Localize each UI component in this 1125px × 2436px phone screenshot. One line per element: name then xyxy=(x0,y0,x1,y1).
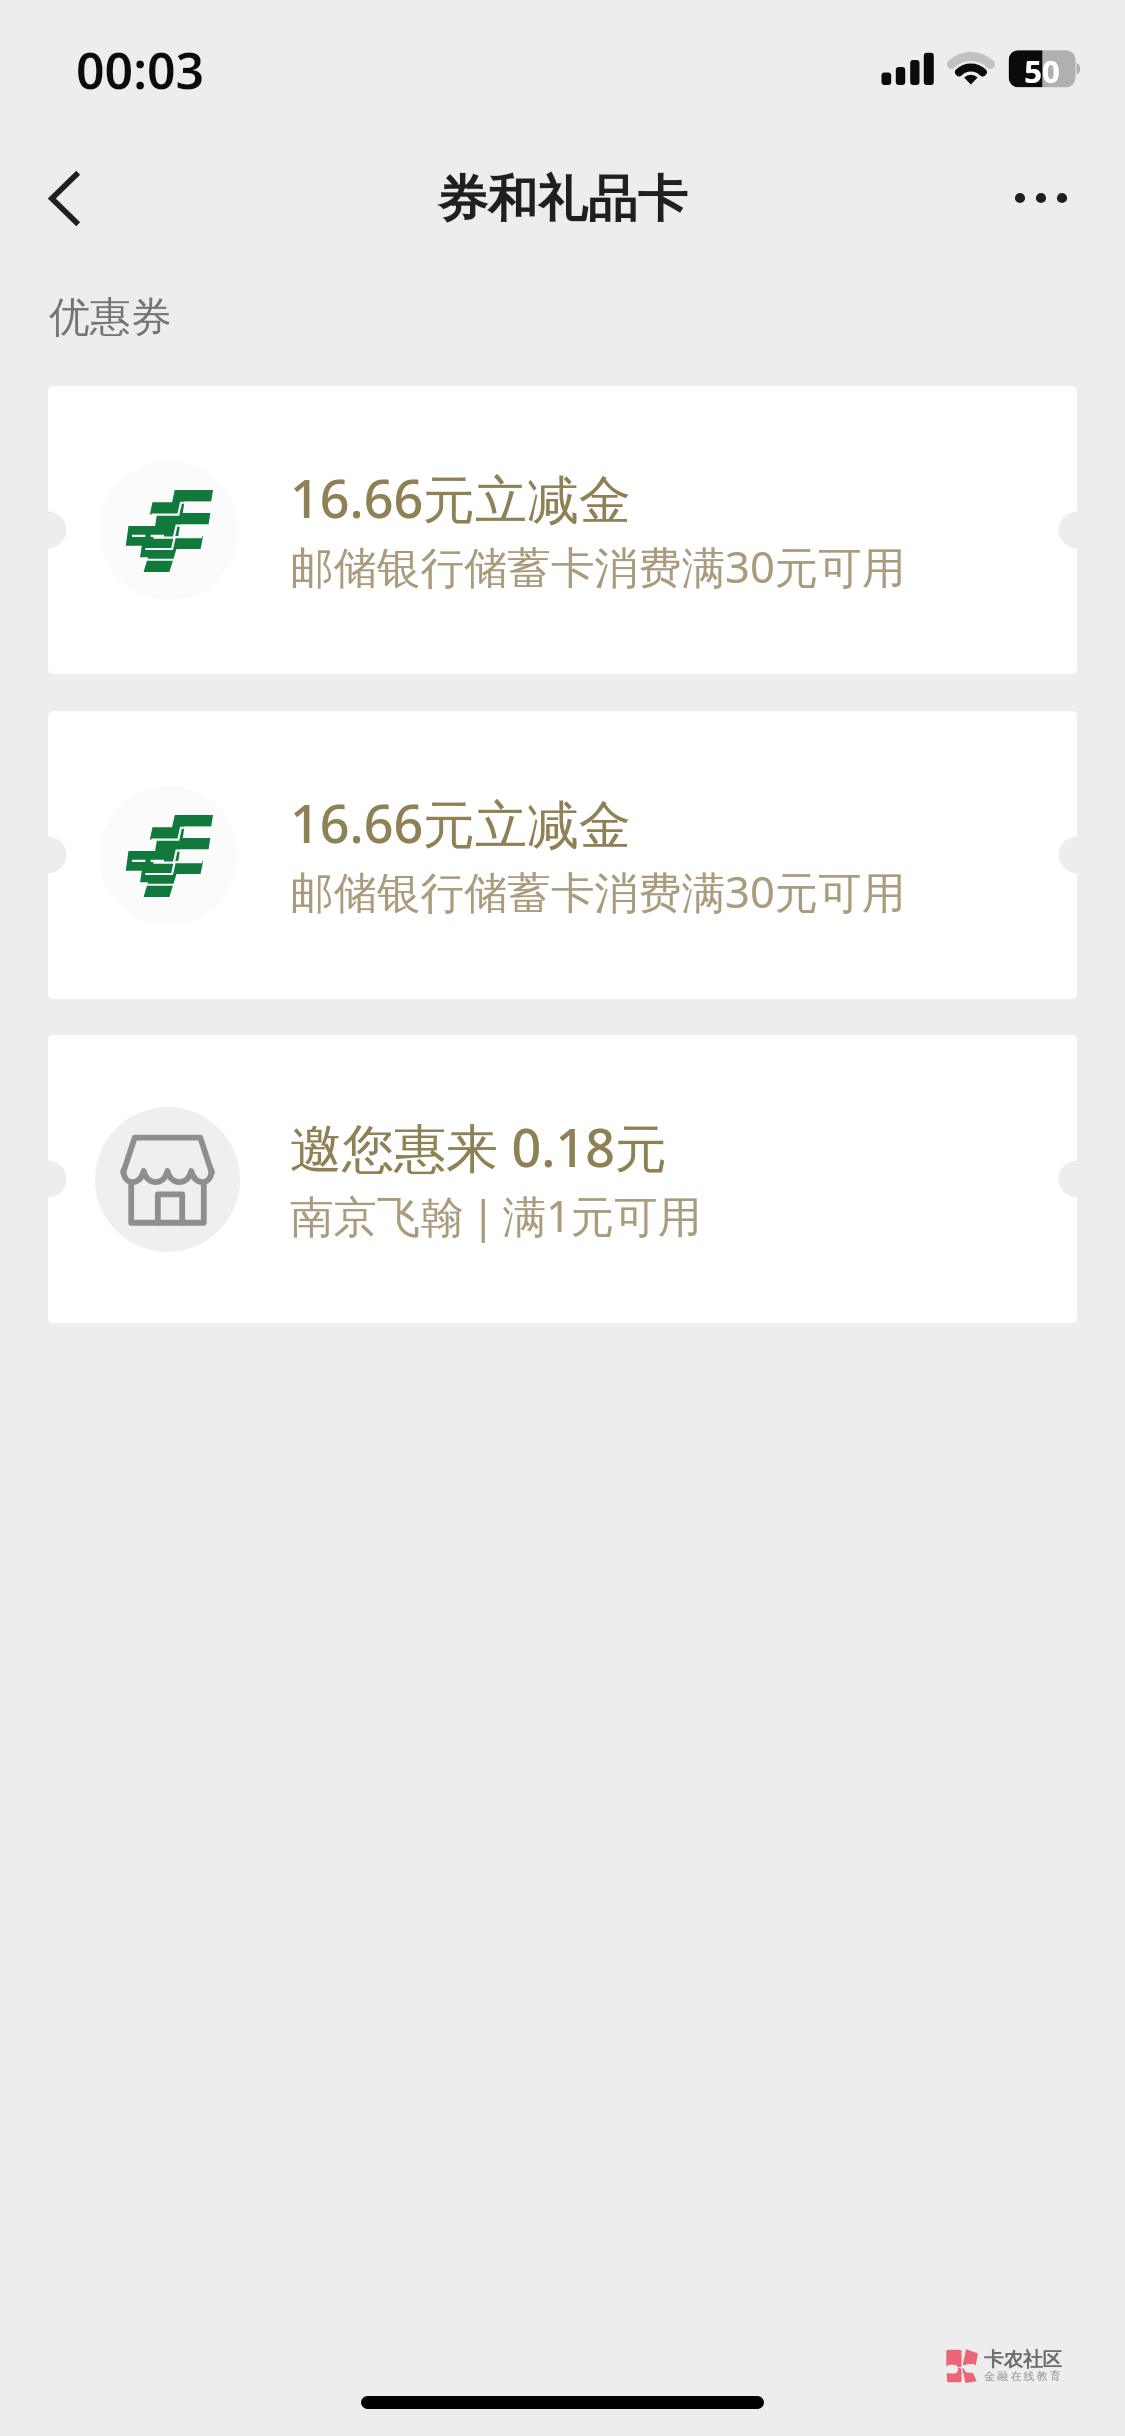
staticText: 50 xyxy=(1024,50,1060,87)
staticText: 券和礼品卡 xyxy=(0,168,1125,231)
staticText: 金融在线教育 xyxy=(984,2369,1064,2383)
button[interactable]: Back xyxy=(14,138,114,258)
staticText: 邮储银行储蓄卡消费满30元可用 xyxy=(290,536,906,595)
staticText: 邀您惠来 0.18元 xyxy=(290,1111,667,1182)
button[interactable]: 16.66元立减金 xyxy=(48,386,1077,674)
staticText: 16.66元立减金 xyxy=(290,787,632,858)
button[interactable]: More options xyxy=(981,138,1101,258)
staticText: 00:03 xyxy=(76,36,205,104)
staticText: 邮储银行储蓄卡消费满30元可用 xyxy=(290,861,906,920)
staticText: 南京飞翰 | 满1元可用 xyxy=(290,1185,702,1244)
staticText: 16.66元立减金 xyxy=(290,462,632,533)
staticText: 优惠券 xyxy=(49,292,172,344)
staticText: 卡农社区 xyxy=(984,2347,1062,2372)
button[interactable]: 邀您惠来 0.18元 xyxy=(48,1035,1077,1323)
button[interactable]: 16.66元立减金 xyxy=(48,711,1077,999)
